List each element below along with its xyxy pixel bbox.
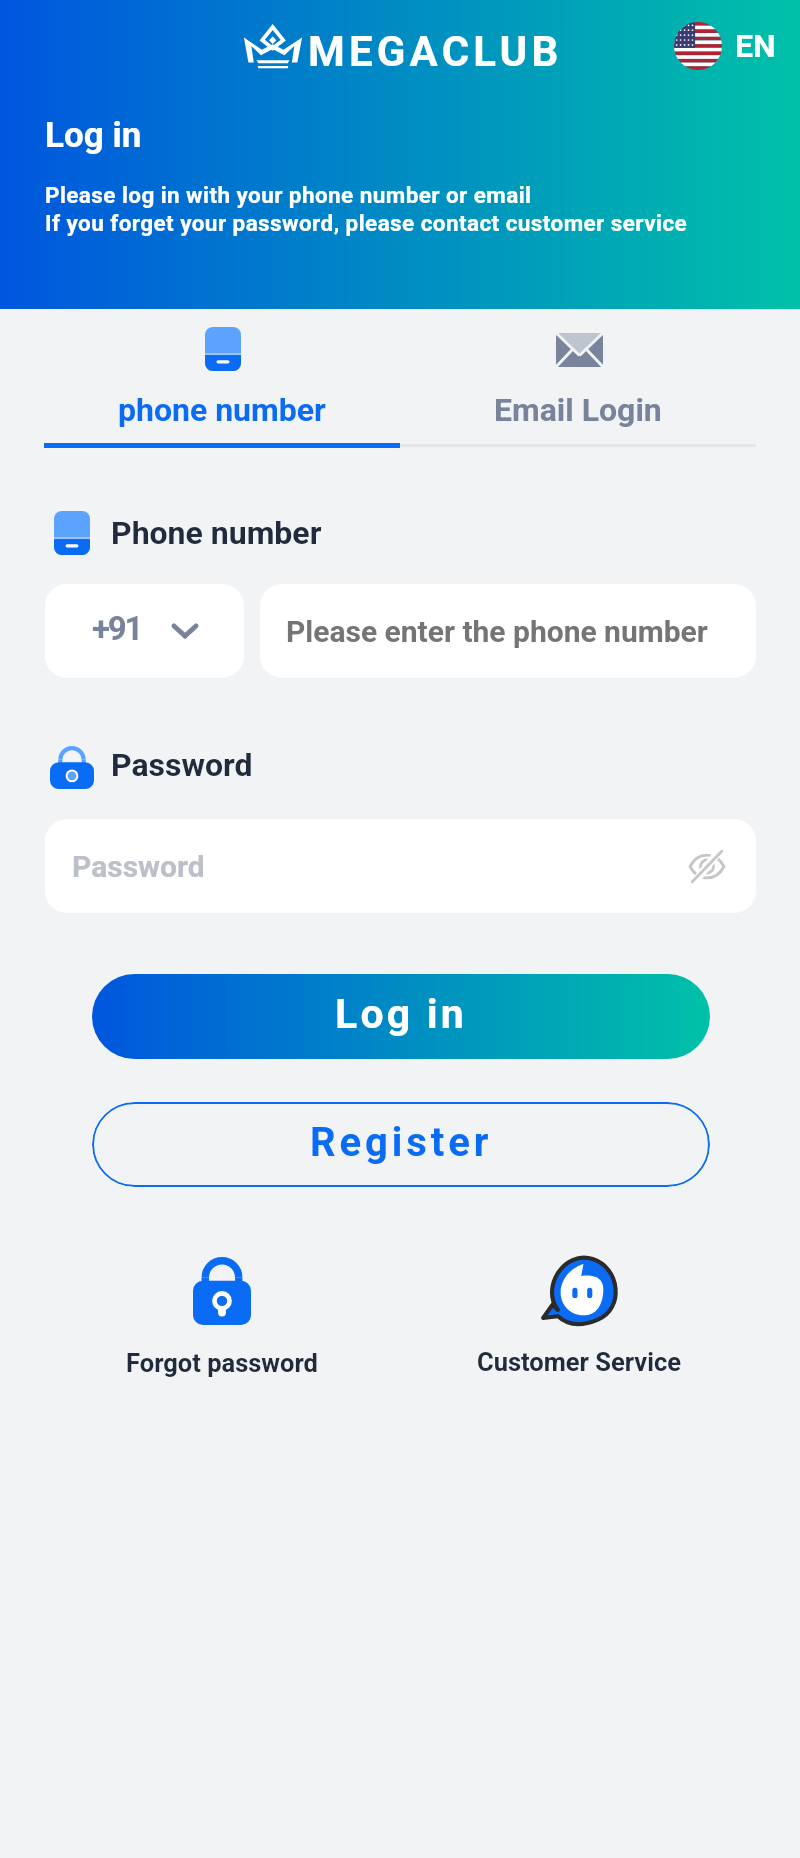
button[interactable]: Show password: [689, 850, 725, 883]
button[interactable]: phone number: [44, 310, 400, 448]
staticText: Register: [310, 1119, 493, 1166]
staticText: Phone number: [111, 514, 322, 552]
staticText: Log in: [45, 115, 142, 156]
button[interactable]: Register: [92, 1102, 710, 1187]
staticText: +91: [92, 609, 142, 648]
staticText: EN: [735, 27, 776, 65]
staticText: Email Login: [494, 391, 662, 429]
button[interactable]: Log in: [92, 974, 710, 1059]
button[interactable]: Password: [45, 819, 756, 913]
button[interactable]: +91: [45, 584, 244, 678]
staticText: Password: [111, 746, 253, 784]
staticText: If you forget your password, please cont…: [45, 210, 688, 236]
staticText: Log in: [335, 990, 467, 1038]
button[interactable]: Please enter the phone number: [260, 584, 756, 678]
staticText: MEGACLUB: [308, 27, 563, 76]
button[interactable]: Email Login: [400, 310, 756, 448]
button[interactable]: Forgot password: [98, 1250, 346, 1390]
staticText: Password: [72, 849, 205, 884]
staticText: Forgot password: [126, 1348, 318, 1378]
staticText: phone number: [118, 391, 326, 429]
staticText: Customer Service: [477, 1347, 682, 1377]
button[interactable]: Customer Service: [455, 1250, 703, 1390]
button[interactable]: Language EN: [674, 22, 722, 70]
staticText: Please log in with your phone number or …: [45, 182, 532, 208]
staticText: Please enter the phone number: [286, 614, 708, 649]
